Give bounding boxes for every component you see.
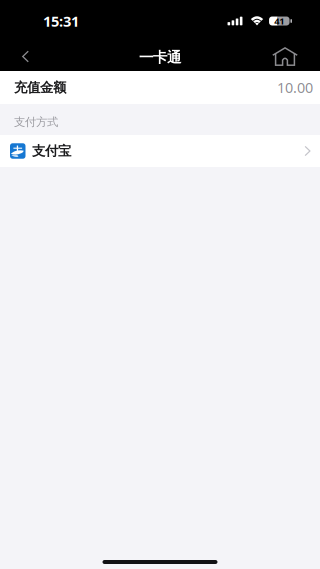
staticText: 15:31 bbox=[43, 11, 79, 31]
staticText: 支付宝 bbox=[32, 143, 71, 159]
button[interactable]: 支付宝 bbox=[0, 135, 320, 167]
staticText: 一卡通 bbox=[139, 48, 181, 66]
button[interactable]: Home bbox=[250, 42, 320, 71]
staticText: 充值金额 bbox=[14, 79, 66, 96]
button[interactable]: 充值金额 bbox=[0, 71, 320, 104]
staticText: 41 bbox=[274, 15, 284, 27]
button[interactable]: Back bbox=[0, 42, 51, 71]
staticText: 10.00 bbox=[277, 78, 313, 97]
staticText: 支付方式 bbox=[14, 115, 58, 129]
